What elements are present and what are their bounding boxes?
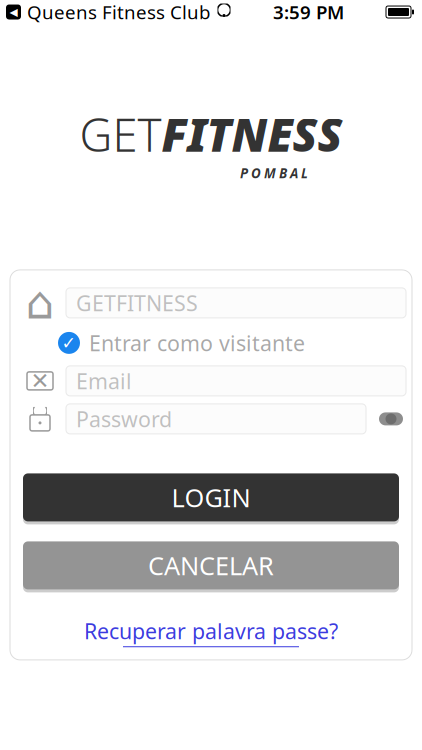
staticText: GET [79, 104, 161, 164]
staticText: FITNESS [161, 104, 342, 164]
staticText: ⌂ [25, 277, 54, 329]
staticText: Email [76, 367, 132, 395]
staticText: LOGIN [171, 481, 250, 514]
staticText: ✓ [61, 333, 76, 353]
staticText: P O M B A L [240, 164, 308, 182]
button[interactable]: Recuperar palavra passe? [84, 617, 338, 647]
staticText: ✕ [30, 368, 49, 394]
staticText: Password [76, 405, 172, 433]
staticText: Recuperar palavra passe? [84, 617, 338, 645]
staticText: GETFITNESS [76, 289, 198, 317]
button[interactable]: LOGIN [23, 472, 399, 523]
staticText: Queens Fitness Club [27, 0, 210, 24]
staticText: ◀ [9, 6, 17, 18]
button[interactable]: Show password [376, 404, 406, 434]
staticText: Entrar como visitante [89, 329, 305, 357]
staticText: CANCELAR [148, 549, 274, 582]
button[interactable]: CANCELAR [23, 540, 399, 591]
button[interactable]: ✓ [10, 326, 412, 360]
staticText: 3:59 PM [273, 0, 344, 24]
